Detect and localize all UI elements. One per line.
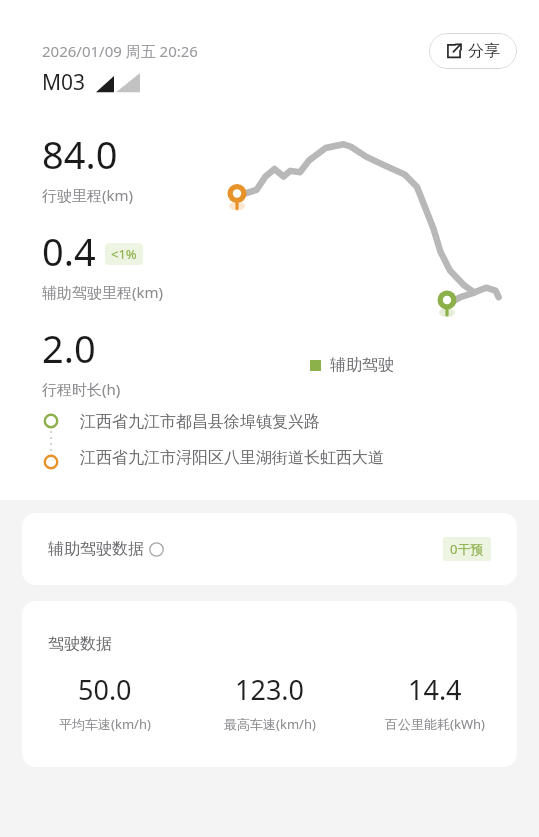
staticText: 50.0 [78, 671, 132, 708]
staticText: 驾驶数据 [48, 634, 112, 654]
staticText: <1% [111, 245, 137, 263]
button[interactable]: 分享 [429, 33, 517, 69]
staticText: 百公里能耗(kWh) [385, 715, 485, 733]
staticText: 辅助驾驶里程(km) [42, 282, 164, 302]
staticText: 84.0 [42, 128, 118, 180]
staticText: 2026/01/09 周五 20:26 [42, 41, 198, 61]
staticText: 2.0 [42, 322, 96, 374]
button[interactable]: 驾驶数据 [22, 601, 517, 767]
staticText: 江西省九江市都昌县徐埠镇复兴路 [80, 412, 320, 432]
staticText: 最高车速(km/h) [224, 715, 316, 733]
staticText: 0干预 [450, 540, 484, 558]
staticText: 123.0 [235, 671, 305, 708]
staticText: 行驶里程(km) [42, 185, 134, 205]
staticText: 辅助驾驶数据 [48, 539, 144, 559]
staticText: 江西省九江市浔阳区八里湖街道长虹西大道 [80, 448, 384, 468]
button[interactable]: 辅助驾驶数据 [22, 513, 517, 585]
staticText: M03 [42, 68, 86, 97]
staticText: 平均车速(km/h) [59, 715, 151, 733]
staticText: 行程时长(h) [42, 379, 121, 399]
staticText: 辅助驾驶 [330, 355, 394, 375]
staticText: 0.4 [42, 225, 96, 277]
staticText: 分享 [468, 41, 500, 61]
other: 帮助 [149, 542, 164, 557]
staticText: 14.4 [408, 671, 462, 708]
